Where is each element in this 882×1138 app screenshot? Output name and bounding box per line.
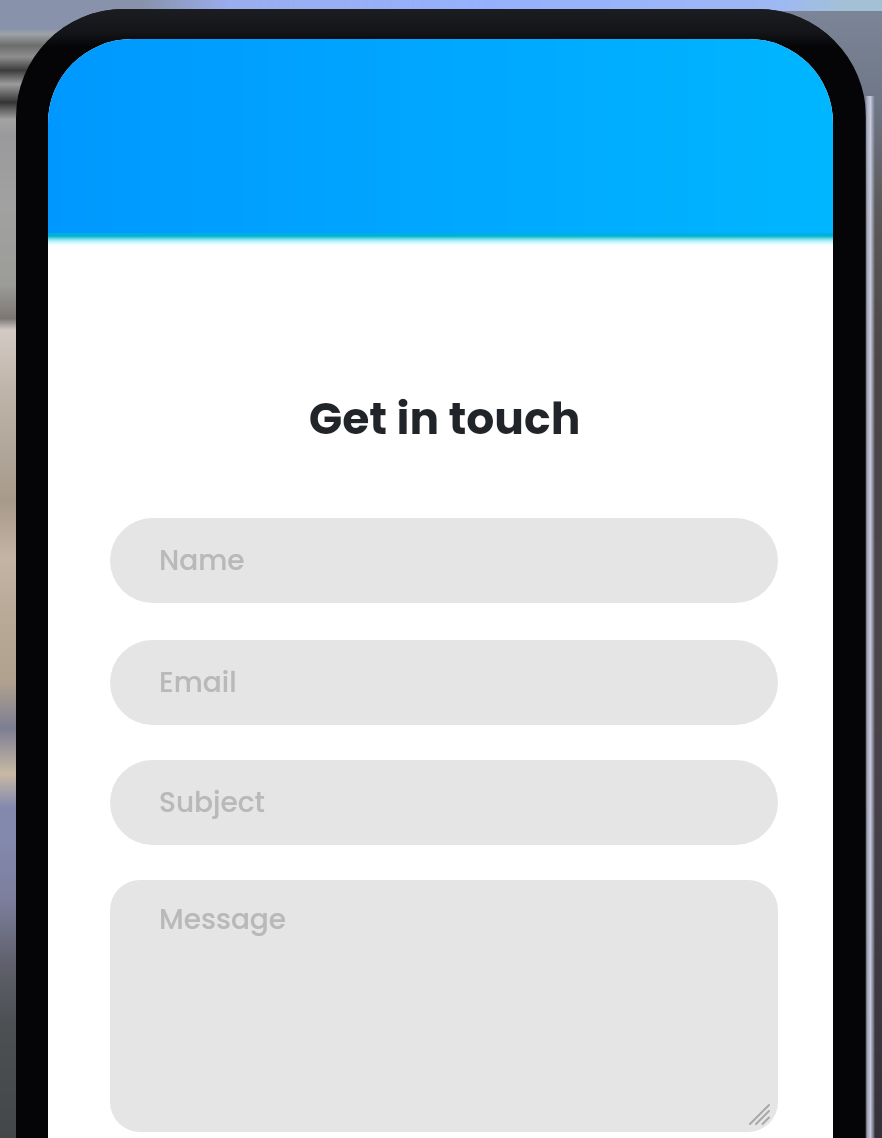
button[interactable]: Name — [110, 518, 778, 603]
button[interactable]: Email — [110, 640, 778, 725]
button[interactable]: Message — [110, 880, 778, 1132]
staticText: Email — [159, 663, 237, 702]
button[interactable]: Resize message field — [748, 1102, 778, 1132]
staticText: Name — [159, 541, 245, 580]
staticText: Subject — [159, 783, 265, 822]
button[interactable]: Subject — [110, 760, 778, 845]
staticText: Get in touch — [56, 388, 833, 450]
staticText: Message — [159, 900, 287, 939]
